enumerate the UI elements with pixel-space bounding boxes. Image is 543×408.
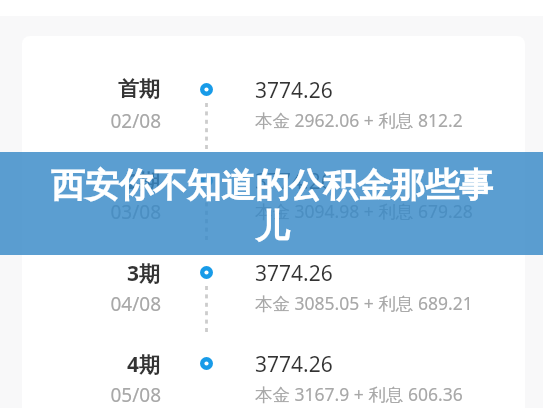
staticText: 4期	[42, 350, 160, 379]
staticText: 3774.26	[255, 167, 333, 196]
staticText: 3774.26	[255, 76, 333, 105]
staticText: 本金 3094.98 + 利息 679.28	[255, 199, 473, 223]
other: Installment timeline marker	[200, 357, 213, 370]
other: Installment timeline marker	[200, 266, 213, 279]
staticText: 本金 2962.06 + 利息 812.2	[255, 108, 463, 132]
button[interactable]: 西安你不知道的公积金那些事儿	[0, 152, 543, 255]
staticText: 西安你不知道的公积金那些事儿	[42, 164, 502, 248]
other: Installment timeline marker	[200, 174, 213, 187]
button[interactable]: 4期	[22, 333, 525, 408]
staticText: 首期	[42, 76, 160, 102]
other: Installment timeline marker	[200, 83, 213, 96]
staticText: 03/08	[42, 199, 161, 225]
staticText: 本金 3167.9 + 利息 606.36	[255, 382, 463, 406]
button[interactable]: 3期	[22, 242, 525, 322]
staticText: 04/08	[42, 291, 161, 317]
staticText: 2期	[42, 167, 160, 196]
staticText: 05/08	[42, 382, 161, 408]
button[interactable]: 首期	[22, 59, 525, 139]
staticText: 02/08	[42, 108, 161, 134]
staticText: 3774.26	[255, 259, 333, 288]
button[interactable]: 2期	[22, 150, 525, 230]
staticText: 3期	[42, 259, 160, 288]
staticText: 本金 3085.05 + 利息 689.21	[255, 291, 473, 315]
staticText: 3774.26	[255, 350, 333, 379]
